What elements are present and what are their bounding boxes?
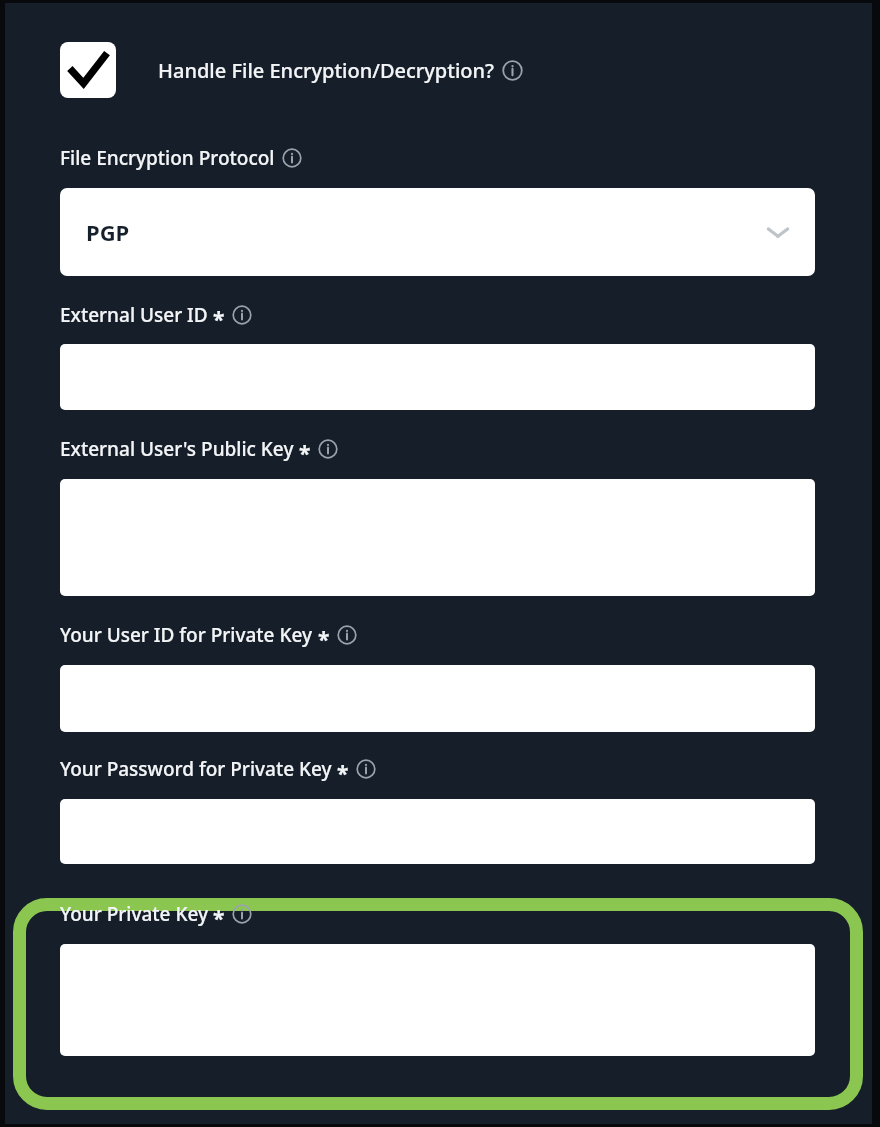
staticText: PGP (86, 217, 130, 247)
staticText: * (213, 305, 225, 325)
staticText: * (213, 904, 225, 924)
staticText: * (318, 625, 330, 645)
staticText: Your Password for Private Key (60, 756, 332, 782)
button[interactable]: More information (337, 625, 357, 645)
button[interactable]: More information (318, 439, 338, 459)
button[interactable]: Text input field (60, 479, 815, 596)
button[interactable]: More information (502, 60, 523, 81)
staticText: Handle File Encryption/Decryption? (158, 57, 494, 84)
button[interactable]: Text input field (60, 944, 815, 1056)
staticText: External User's Public Key (60, 436, 294, 462)
button[interactable]: Text input field (60, 344, 815, 410)
button[interactable]: Handle File Encryption/Decryption checkb… (60, 42, 116, 98)
staticText: * (299, 439, 311, 459)
staticText: Your User ID for Private Key (60, 622, 313, 648)
staticText: External User ID (60, 302, 208, 328)
button[interactable]: Handle File Encryption/Decryption checkb… (60, 39, 815, 101)
button[interactable]: More information (232, 305, 252, 325)
button[interactable]: More information (232, 904, 252, 924)
staticText: File Encryption Protocol (60, 145, 275, 171)
staticText: * (337, 759, 349, 779)
button[interactable]: PGP (60, 188, 815, 276)
button[interactable]: Text input field (60, 665, 815, 732)
staticText: Your Private Key (60, 901, 208, 927)
button[interactable]: Text input field (60, 799, 815, 864)
button[interactable]: More information (356, 759, 376, 779)
button[interactable]: More information (282, 148, 302, 168)
